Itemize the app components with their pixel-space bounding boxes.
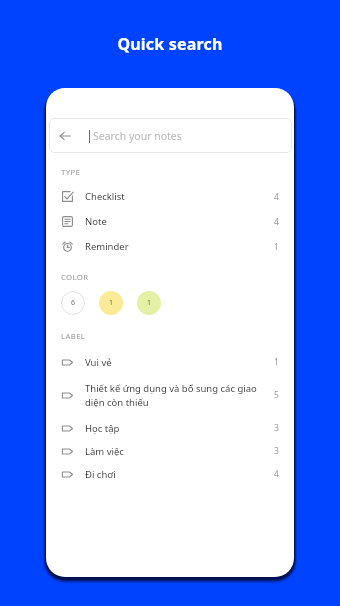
staticText: 4 [274, 191, 279, 203]
button[interactable]: 1 [99, 291, 123, 315]
staticText: 3 [274, 422, 279, 434]
staticText: Làm việc [85, 445, 124, 458]
staticText: Reminder [85, 240, 129, 253]
button[interactable]: 6 [61, 291, 85, 315]
staticText: Search your notes [93, 129, 182, 143]
button[interactable]: Reminder [46, 234, 294, 259]
button[interactable]: Đi chơi [46, 463, 294, 485]
button[interactable]: Back [49, 120, 81, 152]
staticText: LABEL [61, 331, 86, 342]
button[interactable]: Note [46, 209, 294, 234]
staticText: 4 [274, 468, 279, 480]
staticText: Note [85, 215, 107, 228]
button[interactable]: Vui vẻ [46, 351, 294, 373]
staticText: 6 [71, 298, 76, 308]
staticText: 3 [274, 445, 279, 457]
button[interactable]: Học tập [46, 417, 294, 439]
staticText: Vui vẻ [85, 356, 112, 369]
button[interactable]: 1 [137, 291, 161, 315]
staticText: 1 [274, 241, 279, 253]
button[interactable]: Checklist [46, 184, 294, 209]
staticText: Học tập [85, 422, 120, 435]
staticText: 1 [147, 298, 152, 308]
staticText: 4 [274, 216, 279, 228]
staticText: 1 [274, 356, 279, 368]
button[interactable]: Back [49, 118, 292, 153]
staticText: COLOR [61, 272, 89, 283]
staticText: 1 [109, 298, 114, 308]
staticText: Thiết kế ứng dụng và bổ sung các giao di… [85, 382, 268, 409]
staticText: 5 [274, 389, 279, 401]
button[interactable]: Làm việc [46, 440, 294, 462]
staticText: Đi chơi [85, 468, 116, 481]
staticText: TYPE [61, 167, 81, 178]
button[interactable]: Thiết kế ứng dụng và bổ sung các giao di… [46, 376, 294, 414]
staticText: Checklist [85, 190, 125, 203]
staticText: Quick search [0, 33, 340, 55]
